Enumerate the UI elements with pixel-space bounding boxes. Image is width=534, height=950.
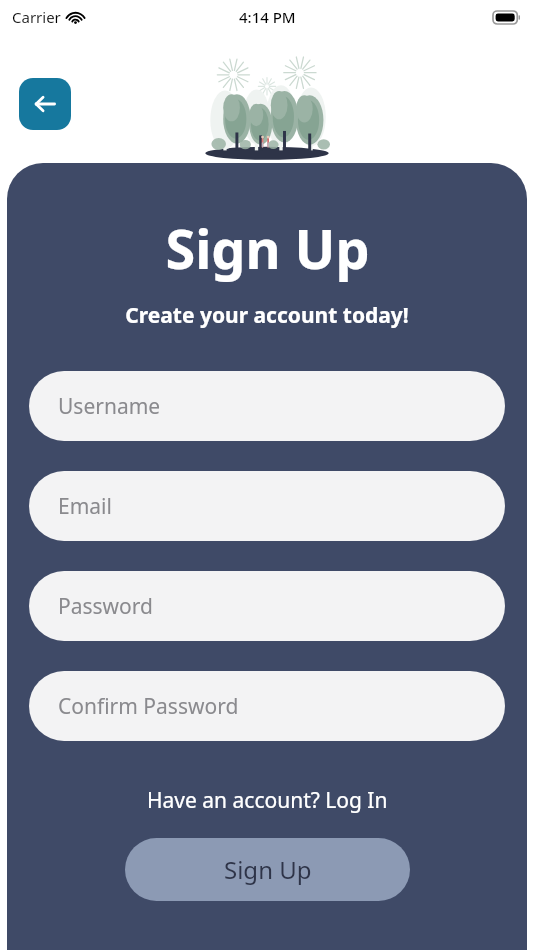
staticText: Sign Up	[224, 853, 312, 886]
staticText: Carrier	[12, 7, 61, 27]
button[interactable]: Email	[29, 471, 505, 541]
button[interactable]: Sign Up	[125, 838, 410, 901]
button[interactable]: Password	[29, 571, 505, 641]
button[interactable]: Have an account? Log In	[141, 784, 394, 817]
staticText: 4:14 PM	[239, 7, 296, 27]
staticText: Password	[58, 592, 153, 621]
staticText: Confirm Password	[58, 692, 239, 721]
button[interactable]: Username	[29, 371, 505, 441]
staticText: Create your account today!	[125, 301, 409, 330]
staticText: Username	[58, 392, 161, 421]
staticText: Have an account? Log In	[147, 786, 388, 815]
button[interactable]: Back	[19, 78, 71, 130]
button[interactable]: Confirm Password	[29, 671, 505, 741]
staticText: Sign Up	[165, 211, 370, 285]
staticText: Email	[58, 492, 112, 521]
